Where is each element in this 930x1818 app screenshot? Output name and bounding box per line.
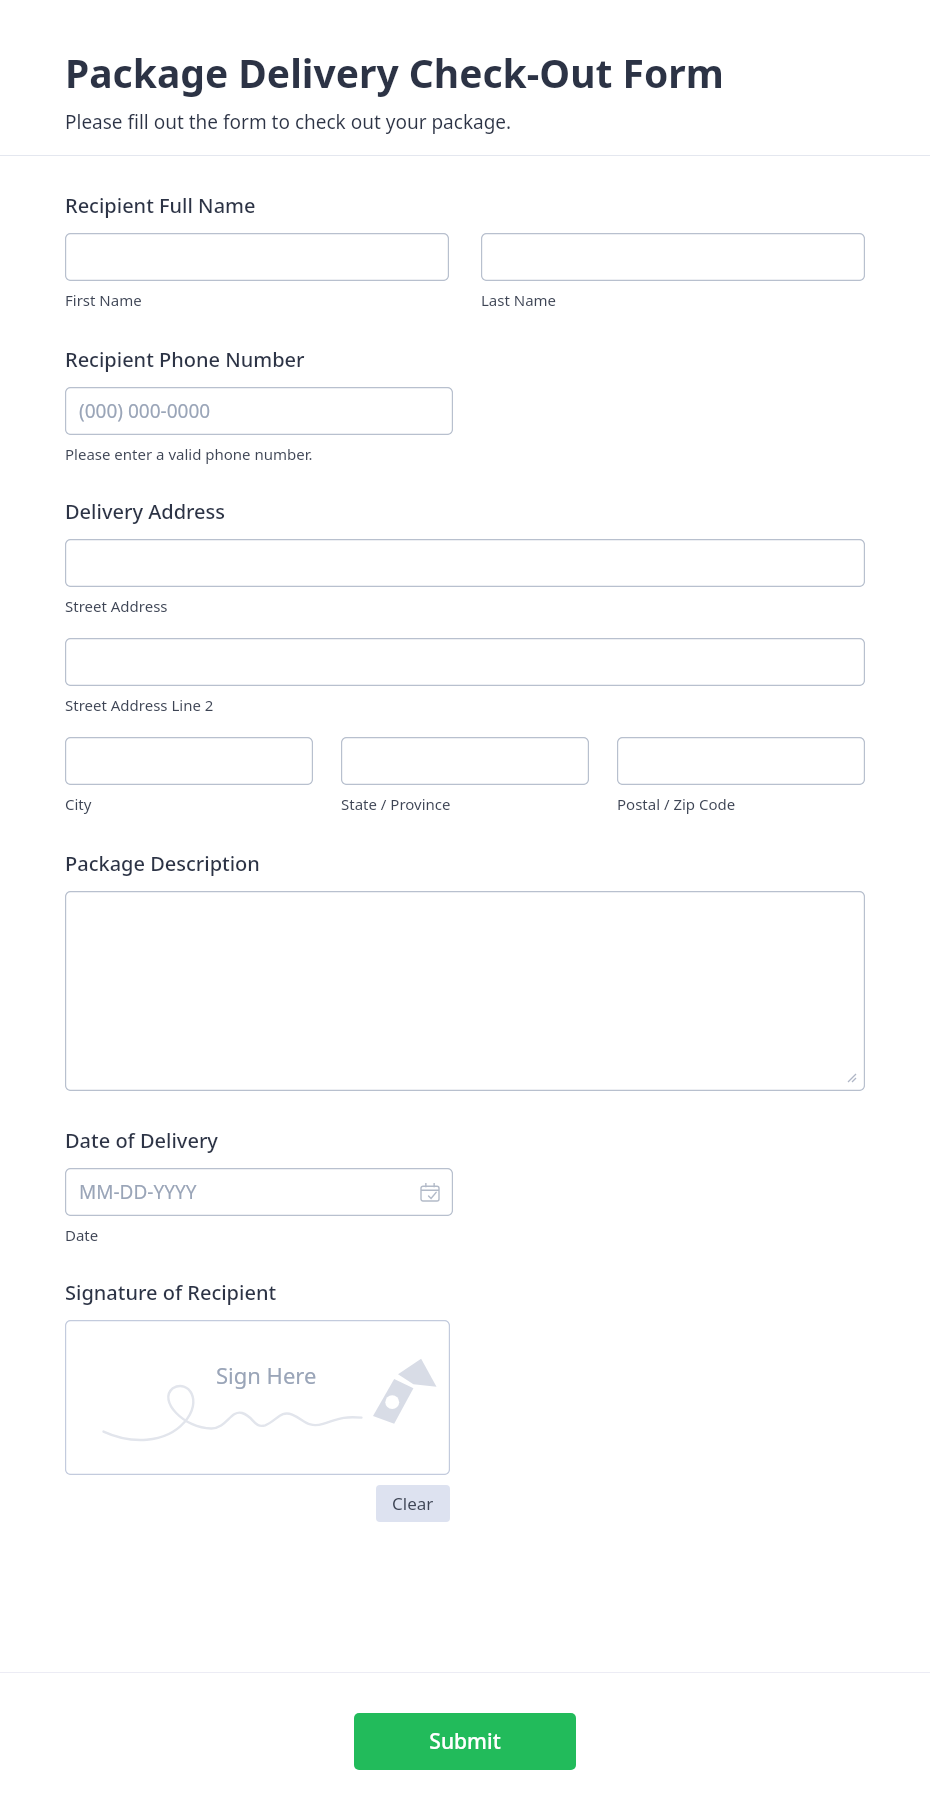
staticText: Package Description: [65, 850, 260, 877]
button[interactable]: [341, 737, 589, 785]
staticText: Submit: [429, 1727, 501, 1756]
staticText: Delivery Address: [65, 498, 226, 525]
button[interactable]: Submit: [354, 1713, 576, 1770]
staticText: Recipient Full Name: [65, 192, 256, 219]
button[interactable]: [481, 233, 865, 281]
staticText: Street Address Line 2: [65, 695, 214, 715]
staticText: State / Province: [341, 794, 451, 814]
staticText: Signature of Recipient: [65, 1279, 277, 1306]
staticText: Date: [65, 1225, 99, 1245]
staticText: Clear: [392, 1492, 434, 1515]
button[interactable]: (000) 000-0000: [65, 387, 453, 435]
staticText: Please fill out the form to check out yo…: [65, 109, 512, 135]
staticText: Postal / Zip Code: [617, 794, 736, 814]
staticText: MM-DD-YYYY: [79, 1179, 197, 1205]
button[interactable]: [65, 891, 865, 1091]
staticText: First Name: [65, 290, 142, 310]
button[interactable]: Clear: [376, 1485, 450, 1522]
button[interactable]: [65, 737, 313, 785]
staticText: Please enter a valid phone number.: [65, 444, 313, 464]
staticText: Package Delivery Check-Out Form: [65, 46, 724, 99]
button[interactable]: [617, 737, 865, 785]
staticText: Street Address: [65, 596, 168, 616]
staticText: Recipient Phone Number: [65, 346, 305, 373]
staticText: Last Name: [481, 290, 557, 310]
button[interactable]: [65, 638, 865, 686]
button[interactable]: [65, 539, 865, 587]
staticText: Date of Delivery: [65, 1127, 218, 1154]
staticText: (000) 000-0000: [79, 398, 211, 424]
button[interactable]: [65, 233, 449, 281]
button[interactable]: Signature pad: [65, 1320, 450, 1475]
button[interactable]: MM-DD-YYYY: [65, 1168, 453, 1216]
staticText: City: [65, 794, 92, 814]
staticText: Sign Here: [216, 1360, 317, 1390]
